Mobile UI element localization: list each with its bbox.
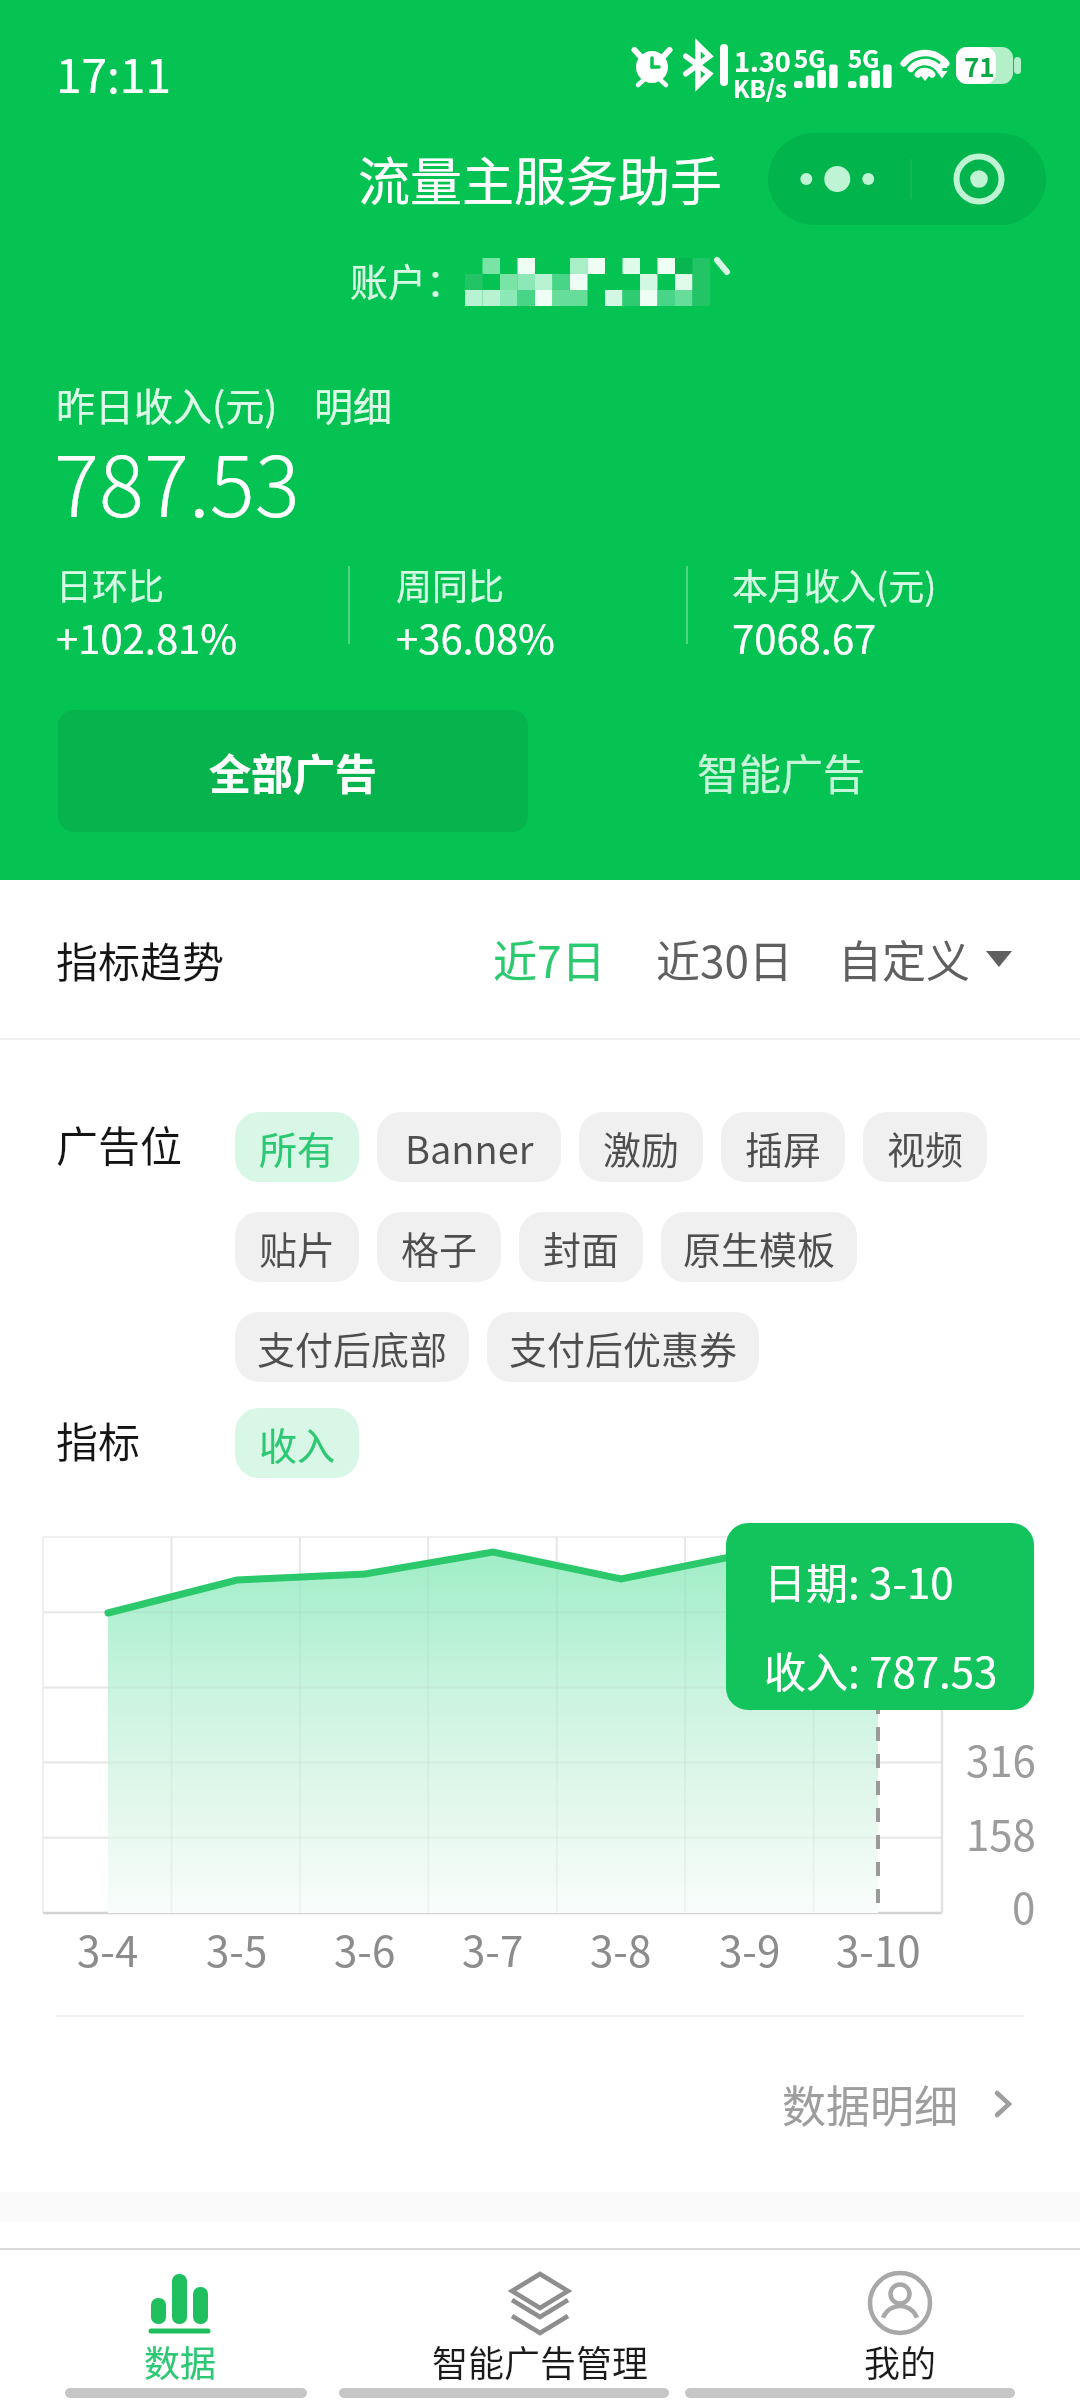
button[interactable]: 贴片 [235, 1212, 359, 1282]
button[interactable]: Banner [377, 1112, 561, 1182]
button[interactable]: 智能广告管理 [360, 2250, 720, 2400]
staticText: 指标趋势 [56, 929, 225, 990]
staticText: 数据明细 [782, 2072, 958, 2136]
staticText: 3-5 [206, 1918, 268, 1979]
staticText: 316 [966, 1728, 1036, 1789]
staticText: 5G [794, 40, 826, 75]
staticText: +36.08% [396, 608, 555, 666]
button[interactable]: 全部广告 [58, 710, 528, 832]
staticText: 3-7 [462, 1918, 524, 1979]
staticText: 3-6 [334, 1918, 396, 1979]
staticText: 昨日收入(元) [56, 376, 278, 432]
staticText: KB/s [733, 70, 787, 105]
button[interactable]: 所有 [235, 1112, 359, 1182]
staticText: 指标 [56, 1409, 141, 1470]
staticText: 我的 [864, 2335, 937, 2387]
button[interactable]: 数据明细 [782, 2072, 1011, 2136]
staticText: 广告位 [56, 1113, 183, 1174]
staticText: 0 [1012, 1875, 1036, 1936]
staticText: 7068.67 [732, 608, 877, 666]
staticText: 插屏 [745, 1120, 822, 1175]
staticText: 格子 [401, 1220, 478, 1275]
staticText: 封面 [543, 1220, 620, 1275]
staticText: 支付后底部 [257, 1320, 448, 1375]
button[interactable]: 原生模板 [661, 1212, 857, 1282]
button[interactable]: 收入 [235, 1408, 359, 1478]
staticText: Banner [405, 1120, 534, 1175]
staticText: 流量主服务助手 [0, 141, 1080, 216]
staticText: 全部广告 [209, 741, 378, 802]
staticText: 本月收入(元) [732, 558, 937, 610]
staticText: 近30日 [656, 927, 793, 991]
button[interactable]: 支付后优惠券 [487, 1312, 759, 1382]
staticText: 收入: 787.53 [764, 1639, 998, 1700]
button[interactable]: 支付后底部 [235, 1312, 469, 1382]
staticText: 贴片 [259, 1220, 336, 1275]
staticText: 日期: 3-10 [764, 1550, 954, 1611]
staticText: 收入 [259, 1416, 336, 1471]
staticText: 智能广告管理 [432, 2335, 649, 2387]
staticText: +102.81% [56, 608, 238, 666]
button[interactable]: 近7日 [481, 917, 618, 1001]
button[interactable]: 数据 [0, 2250, 360, 2400]
button[interactable]: 近30日 [644, 917, 805, 1001]
button[interactable]: 格子 [377, 1212, 501, 1282]
staticText: 71 [964, 47, 995, 84]
button[interactable]: More options [768, 133, 910, 225]
staticText: 原生模板 [683, 1220, 836, 1275]
button[interactable]: 智能广告 [546, 710, 1016, 832]
button[interactable]: 封面 [519, 1212, 643, 1282]
staticText: 视频 [887, 1120, 964, 1175]
staticText: 17:11 [56, 40, 171, 107]
staticText: 自定义 [838, 927, 970, 991]
staticText: 所有 [259, 1120, 336, 1175]
staticText: 158 [966, 1802, 1036, 1863]
button[interactable]: 明细 [300, 368, 407, 440]
staticText: 5G [848, 40, 880, 75]
staticText: 数据 [144, 2335, 217, 2387]
staticText: 周同比 [396, 558, 505, 610]
staticText: 1.30 [734, 41, 791, 80]
staticText: 787.53 [54, 420, 300, 542]
button[interactable]: 我的 [720, 2250, 1080, 2400]
button[interactable]: 插屏 [721, 1112, 845, 1182]
staticText: 3-10 [836, 1918, 921, 1979]
staticText: 支付后优惠券 [509, 1320, 738, 1375]
staticText: 近7日 [493, 927, 606, 991]
staticText: 3-8 [590, 1918, 652, 1979]
staticText: 激励 [603, 1120, 680, 1175]
staticText: 明细 [314, 376, 393, 432]
staticText: 3-9 [719, 1918, 781, 1979]
staticText: 账户： [350, 252, 465, 307]
button[interactable]: Close mini program [912, 133, 1046, 225]
button[interactable]: 视频 [863, 1112, 987, 1182]
staticText: 智能广告 [697, 741, 866, 802]
button[interactable]: 自定义 [830, 917, 1020, 1001]
button[interactable]: 激励 [579, 1112, 703, 1182]
staticText: 3-4 [77, 1918, 139, 1979]
staticText: 日环比 [56, 558, 165, 610]
